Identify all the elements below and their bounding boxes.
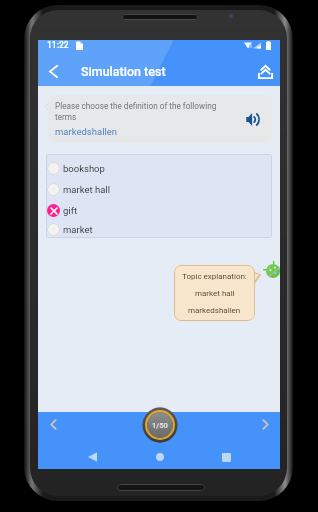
button[interactable]: gift [46,200,272,221]
staticText: markedshallen [55,126,118,137]
staticText: gift [63,205,78,216]
button[interactable]: Recents [214,445,238,469]
staticText: market hall [63,184,110,195]
button[interactable]: Back [80,445,104,469]
staticText: Please choose the definition of the foll… [55,101,220,122]
button[interactable]: Question 1 of 50 [142,407,178,443]
button[interactable]: market hall [46,179,272,200]
staticText: bookshop [63,163,105,174]
button[interactable]: Home [148,445,172,469]
button[interactable]: market [46,221,272,238]
staticText: 1/50 [152,421,168,430]
button[interactable]: Back [38,57,69,86]
staticText: market hall [195,289,235,298]
staticText: Simulation test [81,64,166,79]
staticText: 11:22 [47,40,69,50]
button[interactable]: Play audio [239,106,265,132]
button[interactable]: bookshop [46,158,272,179]
button[interactable]: Previous [38,412,68,436]
button[interactable]: Next [250,412,280,436]
button[interactable]: Helper robot [262,260,284,282]
staticText: Topic explanation: [182,272,247,281]
staticText: markedshallen [188,306,241,315]
button[interactable]: Export [250,57,280,86]
staticText: market [63,224,93,235]
